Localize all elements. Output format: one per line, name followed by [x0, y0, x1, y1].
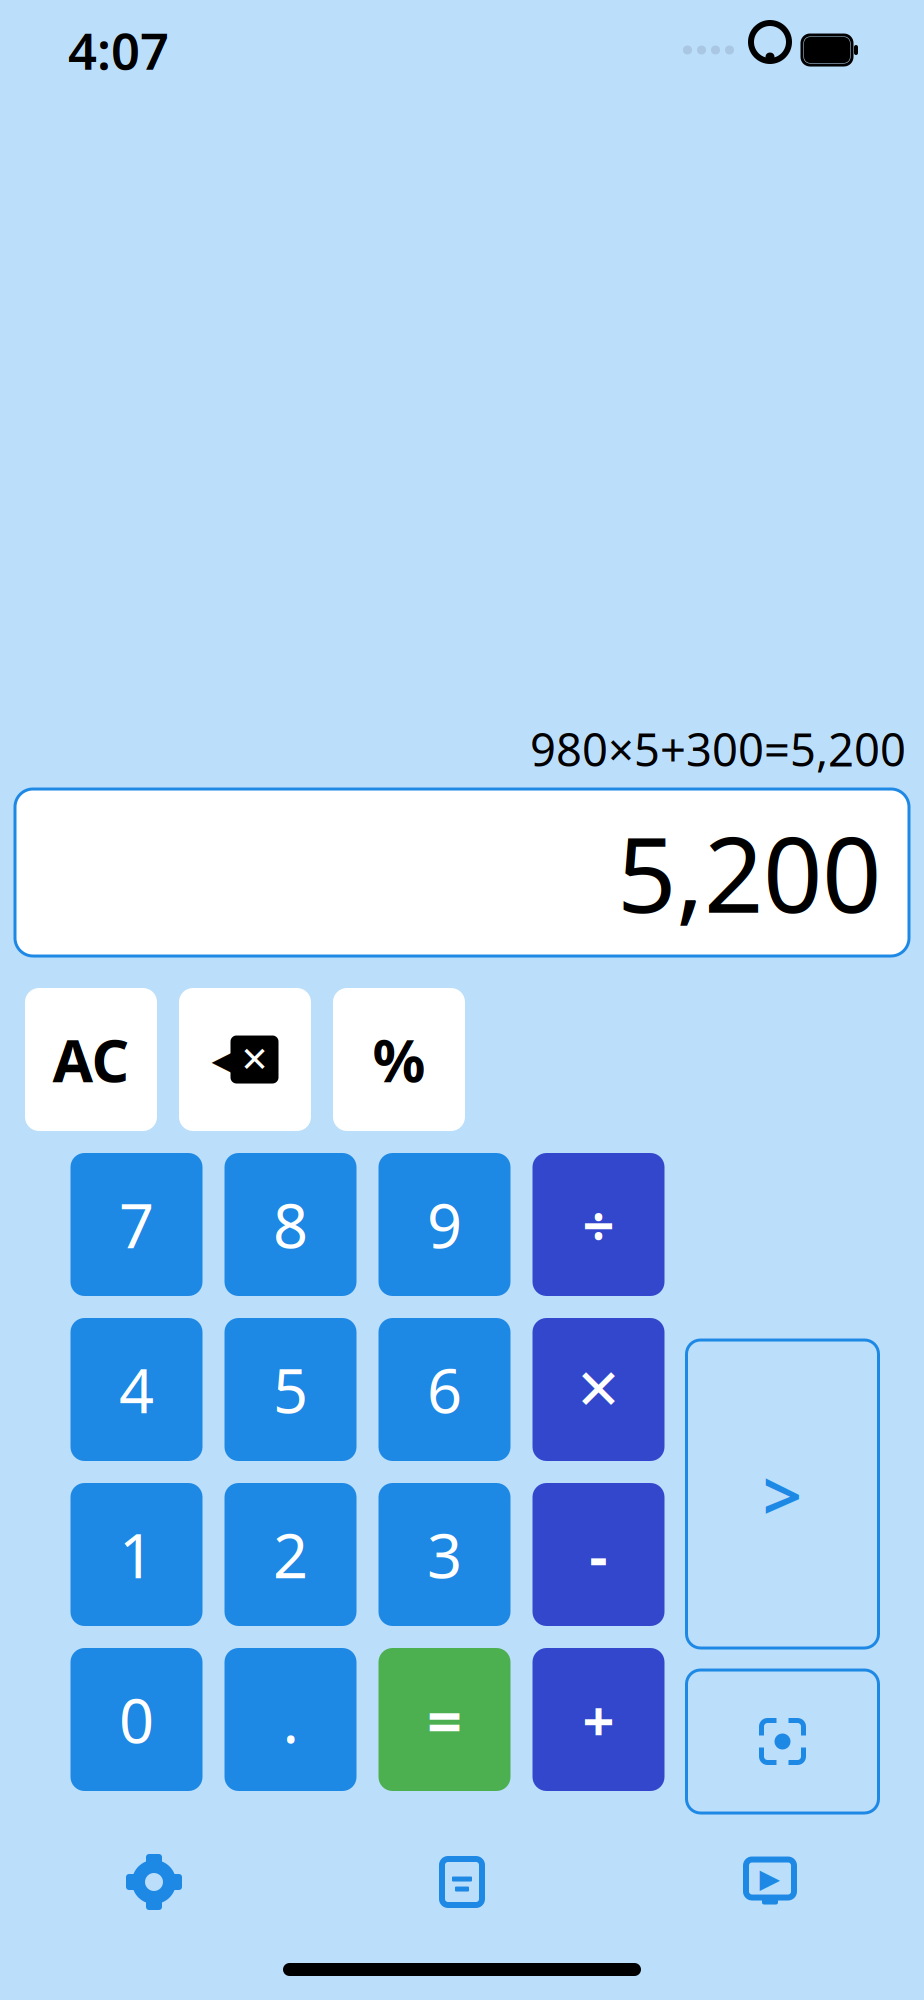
staticText: AC — [52, 1020, 129, 1098]
staticText: % — [372, 1020, 425, 1098]
button[interactable]: 3 — [378, 1483, 510, 1626]
button[interactable]: % — [333, 988, 465, 1131]
staticText: 9 — [427, 1184, 462, 1265]
staticText: ▶ — [759, 1863, 780, 1894]
button[interactable]: 1 — [70, 1483, 202, 1626]
staticText: 3 — [427, 1514, 462, 1595]
button[interactable]: Subtract — [532, 1483, 664, 1626]
button[interactable]: Settings — [0, 1847, 308, 1917]
staticText: 980×5+300=5,200 — [530, 719, 906, 779]
staticText: 0 — [119, 1679, 154, 1760]
button[interactable]: Scan — [686, 1670, 878, 1813]
staticText: ◀ — [211, 1037, 242, 1082]
button[interactable]: Multiply — [532, 1318, 664, 1461]
button[interactable]: History — [308, 1847, 616, 1917]
button[interactable]: AC — [25, 988, 157, 1131]
button[interactable]: 9 — [378, 1153, 510, 1296]
staticText: - — [589, 1517, 607, 1592]
staticText: + — [582, 1682, 614, 1757]
staticText: 4 — [119, 1349, 154, 1430]
button[interactable]: Delete — [179, 988, 311, 1131]
button[interactable]: Divide — [532, 1153, 664, 1296]
staticText: 4:07 — [68, 16, 169, 84]
staticText: = — [427, 1679, 462, 1760]
button[interactable]: 7 — [70, 1153, 202, 1296]
button[interactable]: Add — [532, 1648, 664, 1791]
staticText: 6 — [427, 1349, 462, 1430]
staticText: 7 — [119, 1184, 154, 1265]
button[interactable]: . — [224, 1648, 356, 1791]
staticText: ÷ — [582, 1187, 614, 1262]
staticText: 2 — [273, 1514, 308, 1595]
button[interactable]: 6 — [378, 1318, 510, 1461]
button[interactable]: Next — [686, 1340, 878, 1648]
button[interactable]: 2 — [224, 1483, 356, 1626]
staticText: 8 — [273, 1184, 308, 1265]
button[interactable]: 4 — [70, 1318, 202, 1461]
button[interactable]: Media — [616, 1847, 924, 1917]
button[interactable]: 0 — [70, 1648, 202, 1791]
button[interactable]: 8 — [224, 1153, 356, 1296]
staticText: 5 — [273, 1349, 308, 1430]
staticText: ✕ — [240, 1040, 269, 1079]
staticText: 5,200 — [617, 803, 881, 941]
staticText: 1 — [119, 1514, 154, 1595]
staticText: ✕ — [575, 1358, 622, 1421]
staticText: . — [282, 1679, 298, 1760]
staticText: > — [762, 1448, 802, 1540]
button[interactable]: Equals — [378, 1648, 510, 1791]
button[interactable]: 5 — [224, 1318, 356, 1461]
